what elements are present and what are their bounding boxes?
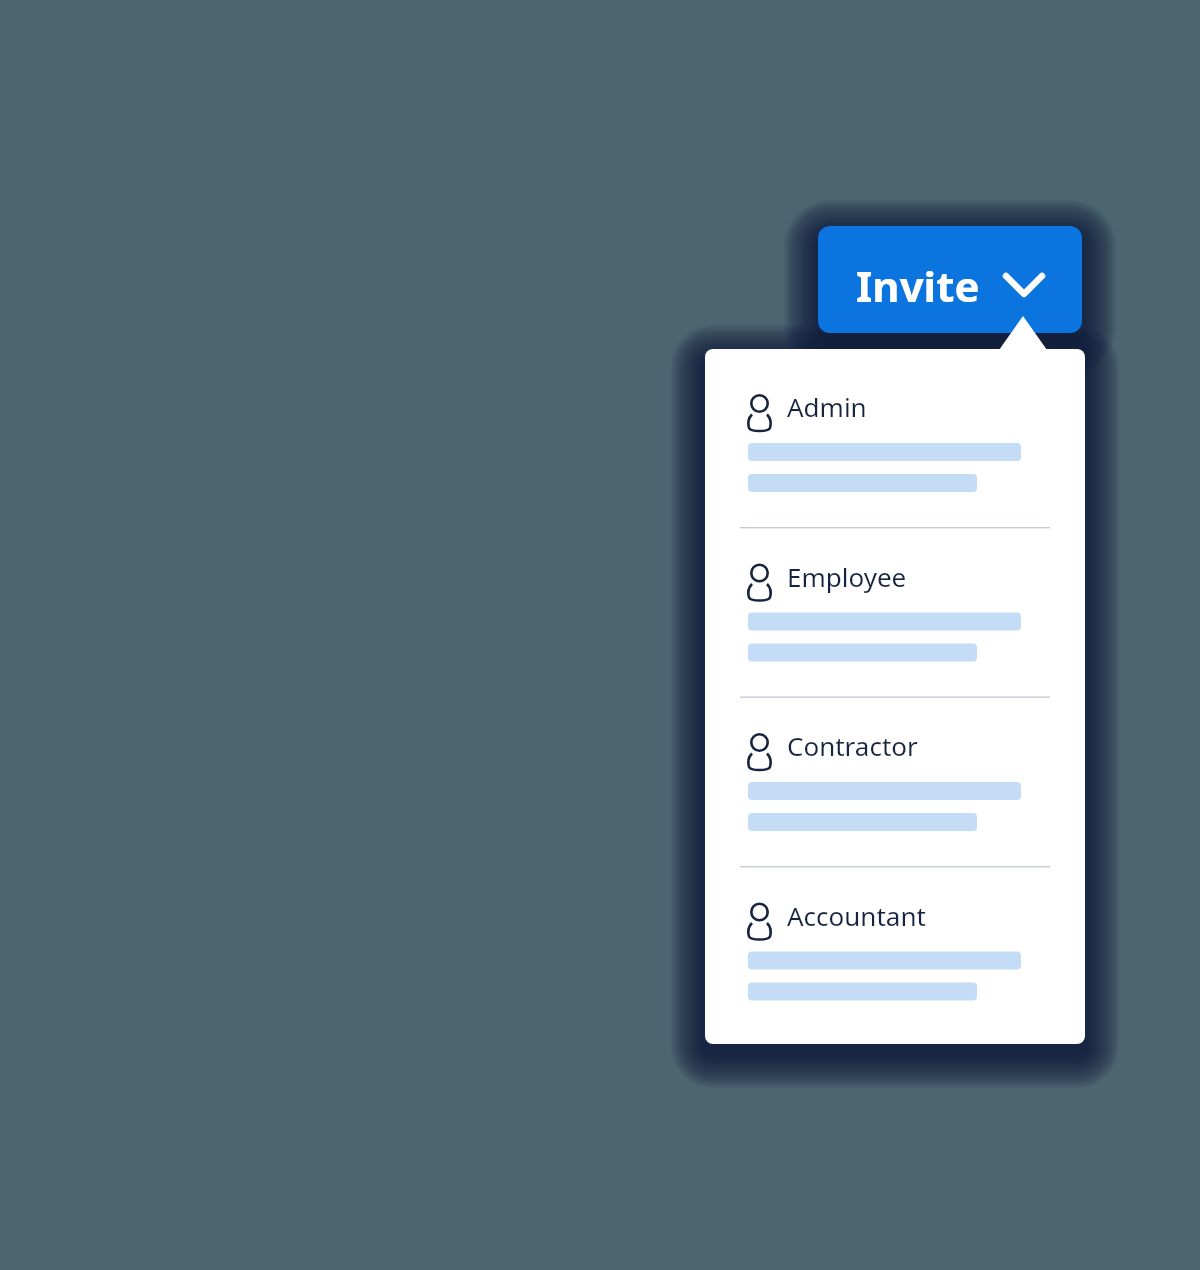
staticText: Admin	[787, 389, 867, 424]
button[interactable]	[705, 875, 1085, 1033]
button[interactable]	[705, 705, 1085, 863]
button[interactable]	[705, 366, 1085, 524]
staticText: Accountant	[787, 898, 926, 933]
button[interactable]	[818, 226, 1082, 333]
button[interactable]: Expand invite options	[1000, 262, 1048, 310]
staticText: Contractor	[787, 728, 918, 763]
staticText: Invite	[856, 257, 980, 314]
staticText: Employee	[787, 559, 907, 594]
button[interactable]	[705, 536, 1085, 694]
